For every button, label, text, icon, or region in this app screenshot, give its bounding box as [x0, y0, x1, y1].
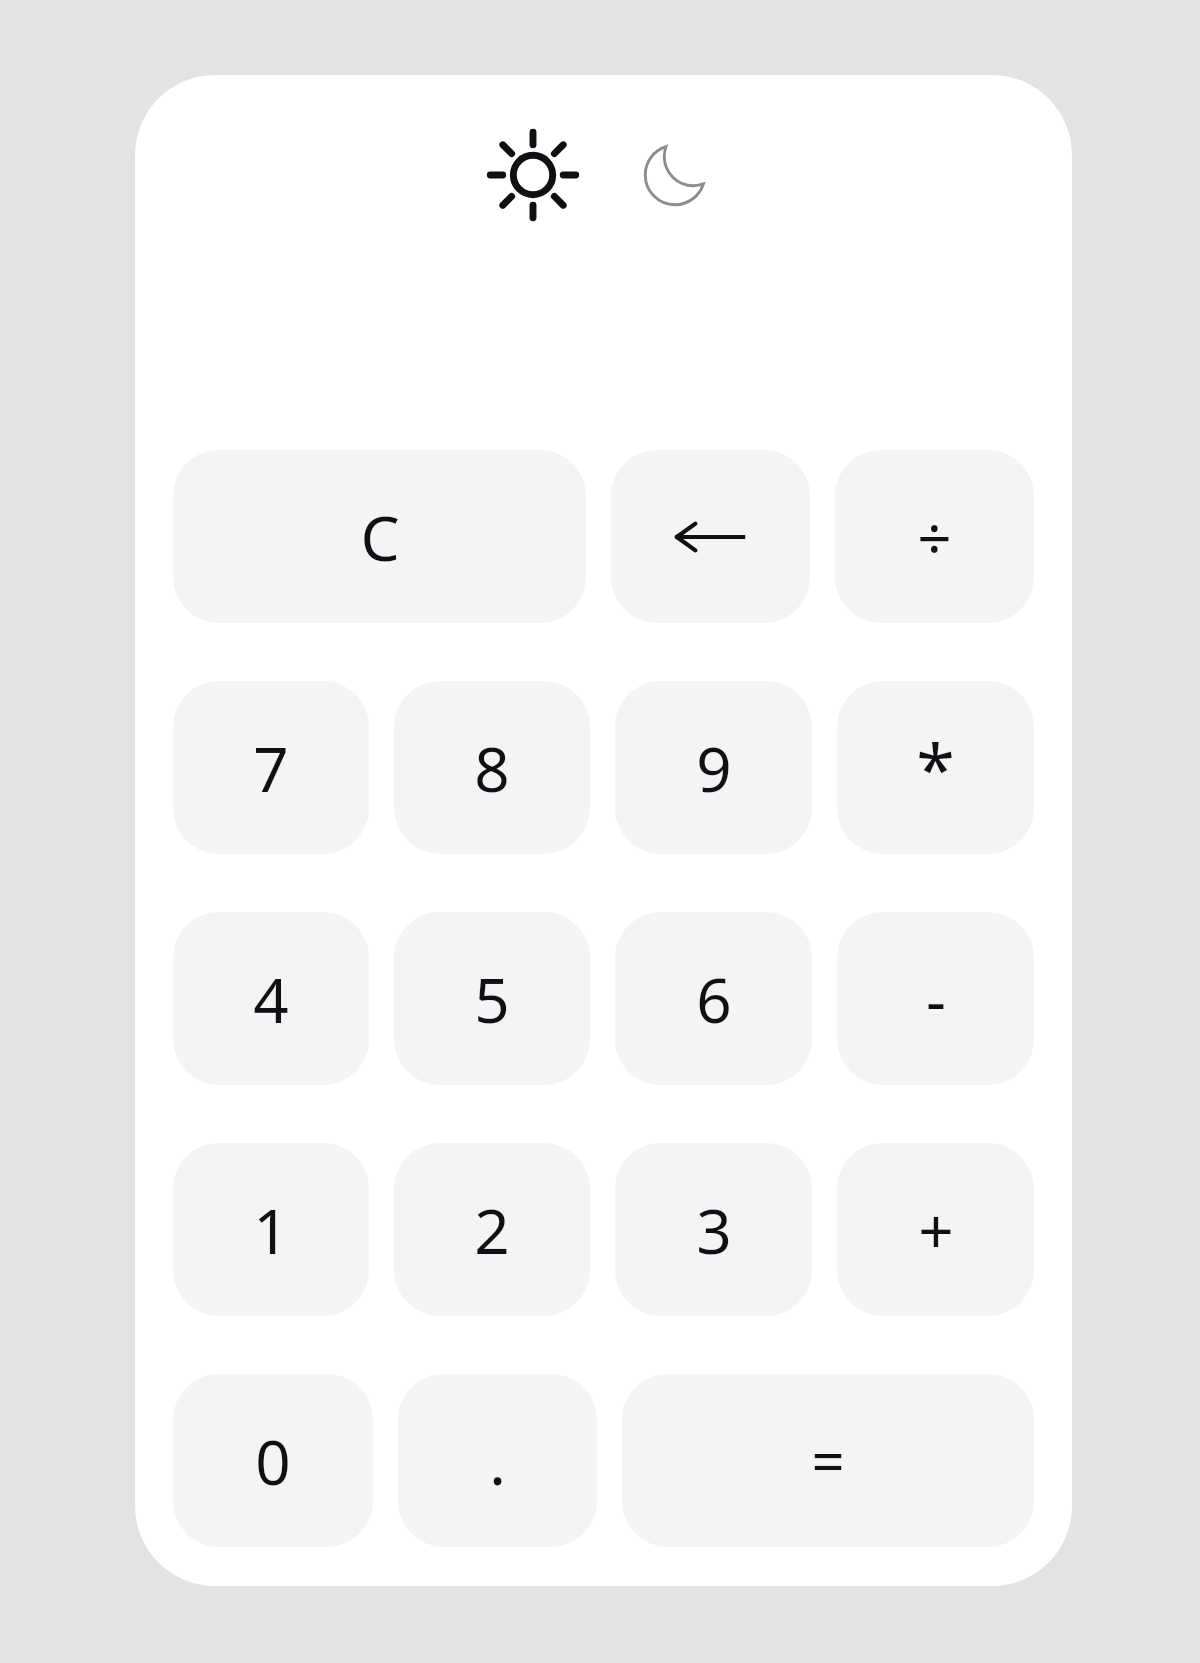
- button[interactable]: 2: [394, 1143, 590, 1316]
- staticText: *: [916, 720, 955, 815]
- button[interactable]: 8: [394, 681, 590, 854]
- staticText: -: [926, 957, 946, 1041]
- staticText: C: [360, 495, 400, 579]
- button[interactable]: +: [837, 1143, 1034, 1316]
- button[interactable]: 9: [615, 681, 812, 854]
- staticText: 5: [474, 957, 510, 1041]
- button[interactable]: *: [837, 681, 1034, 854]
- button[interactable]: -: [837, 912, 1034, 1085]
- staticText: 0: [255, 1419, 291, 1503]
- button[interactable]: 3: [615, 1143, 812, 1316]
- button[interactable]: Light theme: [485, 127, 581, 223]
- button[interactable]: 4: [173, 912, 369, 1085]
- button[interactable]: C: [173, 450, 586, 623]
- button[interactable]: =: [622, 1374, 1034, 1547]
- staticText: 2: [474, 1188, 510, 1272]
- staticText: 1: [253, 1188, 289, 1272]
- button[interactable]: 1: [173, 1143, 369, 1316]
- staticText: 6: [696, 957, 732, 1041]
- button[interactable]: Backspace: [611, 450, 810, 623]
- staticText: ÷: [917, 496, 952, 578]
- button[interactable]: 6: [615, 912, 812, 1085]
- button[interactable]: .: [398, 1374, 597, 1547]
- staticText: 9: [696, 726, 732, 810]
- button[interactable]: Dark theme: [627, 127, 723, 223]
- button[interactable]: 5: [394, 912, 590, 1085]
- button[interactable]: ÷: [835, 450, 1034, 623]
- staticText: 3: [696, 1188, 732, 1272]
- button[interactable]: 7: [173, 681, 369, 854]
- staticText: 4: [253, 957, 289, 1041]
- button[interactable]: 0: [173, 1374, 373, 1547]
- staticText: 8: [474, 726, 510, 810]
- staticText: +: [918, 1188, 954, 1272]
- staticText: .: [489, 1419, 506, 1503]
- staticText: 7: [253, 726, 289, 810]
- staticText: =: [811, 1421, 845, 1500]
